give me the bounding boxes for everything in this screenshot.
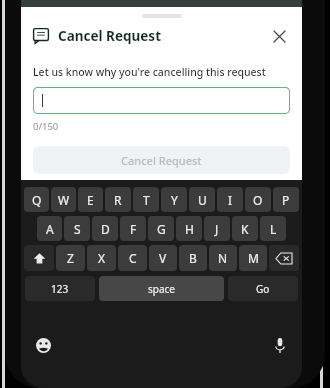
staticText: K [241,221,249,237]
staticText: Cancel Request [121,153,202,168]
button[interactable]: P [273,187,299,212]
button[interactable]: Backspace [269,245,299,271]
staticText: E [87,192,94,208]
button[interactable]: N [209,245,237,271]
staticText: C [129,250,137,266]
staticText: G [157,221,166,237]
button[interactable]: Shift [24,245,54,271]
button[interactable]: space [99,276,224,301]
button[interactable]: U [189,187,215,212]
staticText: N [218,250,228,266]
button[interactable]: 123 [25,276,95,301]
staticText: Q [32,192,42,208]
staticText: F [130,221,137,237]
button[interactable]: Voice input [268,333,292,357]
staticText: M [248,250,259,266]
button[interactable]: B [179,245,207,271]
button[interactable]: X [87,245,116,271]
button[interactable]: I [217,187,243,212]
staticText: O [253,192,263,208]
button[interactable]: M [239,245,267,271]
staticText: R [114,192,122,208]
staticText: H [185,221,194,237]
staticText: S [74,221,81,237]
button[interactable]: G [148,216,174,241]
staticText: U [198,192,207,208]
button[interactable]: Go [228,276,298,301]
button[interactable]: Close [268,25,290,47]
staticText: W [58,192,70,208]
staticText: B [189,250,197,266]
staticText: L [270,221,277,237]
staticText: J [215,221,219,237]
button[interactable]: L [260,216,286,241]
staticText: Go [256,282,270,296]
button[interactable]: O [245,187,271,212]
button[interactable]: Emoji [31,333,55,357]
button[interactable]: V [149,245,177,271]
staticText: Let us know why you're cancelling this r… [33,65,266,79]
button[interactable] [33,87,290,114]
button[interactable]: C [118,245,147,271]
button[interactable]: Y [161,187,187,212]
button[interactable]: A [37,216,62,241]
button[interactable]: Z [56,245,85,271]
staticText: D [101,221,110,237]
button[interactable]: Q [24,187,49,212]
staticText: T [143,192,150,208]
button[interactable]: E [78,187,103,212]
button[interactable]: W [51,187,76,212]
staticText: I [228,192,233,208]
button[interactable]: D [92,216,118,241]
staticText: space [148,282,175,296]
button[interactable]: H [176,216,202,241]
staticText: Y [171,192,178,208]
staticText: P [282,192,290,208]
staticText: X [98,250,106,266]
button[interactable]: J [204,216,230,241]
button[interactable]: Cancel Request [33,146,290,174]
button[interactable]: S [64,216,90,241]
staticText: A [46,221,54,237]
staticText: 0/150 [33,120,59,133]
button[interactable]: R [105,187,131,212]
button[interactable]: K [232,216,258,241]
staticText: 123 [51,282,69,296]
staticText: Cancel Request [58,27,162,45]
button[interactable]: T [133,187,159,212]
staticText: Z [67,250,74,266]
button[interactable]: F [120,216,146,241]
staticText: V [159,250,167,266]
